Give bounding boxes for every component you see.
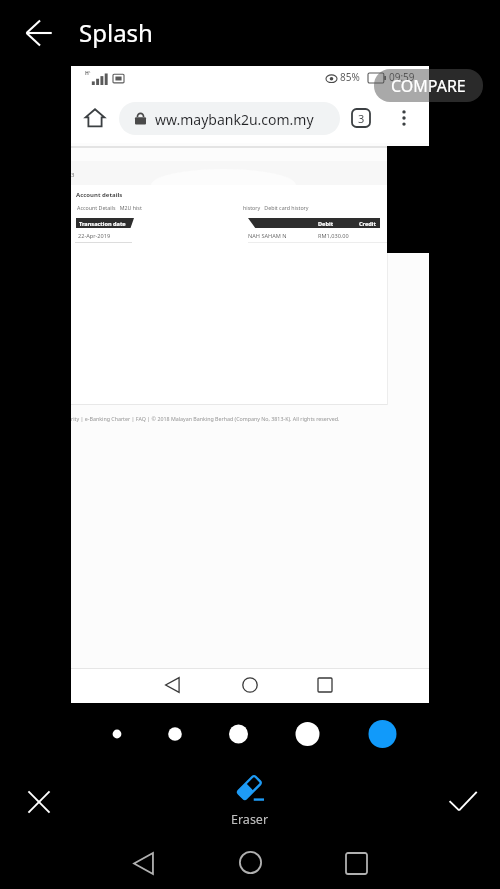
staticText: RM1,030.00 bbox=[318, 232, 349, 240]
staticText: 09:59 bbox=[389, 70, 415, 84]
staticText: 3 bbox=[71, 171, 75, 179]
button[interactable]: Eraser bbox=[231, 775, 269, 828]
staticText: 3 bbox=[358, 111, 365, 126]
button[interactable]: Recents bbox=[332, 839, 380, 887]
staticText: COMPARE bbox=[391, 75, 466, 97]
button[interactable]: Back bbox=[119, 839, 167, 887]
staticText: Debit bbox=[318, 220, 334, 228]
staticText: Account Details M2U hist bbox=[77, 204, 142, 211]
button[interactable]: COMPARE bbox=[374, 69, 483, 102]
staticText: H⁺ bbox=[85, 70, 91, 77]
staticText: Eraser bbox=[231, 811, 269, 828]
staticText: ww.maybank2u.com.my bbox=[155, 110, 314, 129]
staticText: Account details bbox=[76, 191, 123, 199]
staticText: Transaction date bbox=[79, 220, 126, 228]
staticText: Credit bbox=[359, 220, 376, 228]
button[interactable]: Back bbox=[15, 9, 63, 57]
button[interactable]: Done bbox=[438, 777, 488, 827]
button[interactable]: Cancel bbox=[14, 777, 64, 827]
staticText: rity | e-Banking Charter | FAQ | © 2018 … bbox=[71, 415, 340, 422]
staticText: NAH SAHAM N bbox=[248, 232, 287, 240]
staticText: Splash bbox=[79, 16, 153, 49]
staticText: history Debit card history bbox=[243, 204, 309, 211]
button[interactable]: Home bbox=[226, 838, 274, 886]
staticText: 22-Apr-2019 bbox=[78, 232, 111, 240]
staticText: 85% bbox=[340, 70, 360, 84]
